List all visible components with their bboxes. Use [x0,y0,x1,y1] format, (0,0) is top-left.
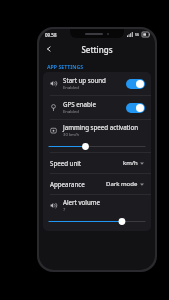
staticText: GPS enable [63,100,96,108]
staticText: Enabled [63,109,79,115]
staticText: Enabled [63,85,79,91]
button[interactable]: Back [41,41,57,57]
button[interactable]: Start up sound [43,72,151,95]
staticText: Settings [81,44,113,55]
button[interactable]: Alert volume [43,195,151,227]
staticText: Alert volume [63,198,101,206]
button[interactable]: Toggle [126,103,145,113]
staticText: Appearance [50,180,85,188]
staticText: Start up sound [63,76,106,84]
button[interactable]: GPS enable [43,96,151,119]
staticText: 56 [135,32,140,37]
button[interactable]: Jamming speed activation [43,120,151,152]
button[interactable]: Speed unit [43,153,151,173]
staticText: APP SETTINGS [47,63,84,70]
staticText: 30 km/h [63,132,80,138]
staticText: Dark mode [106,180,138,188]
button[interactable]: Appearance [43,174,151,194]
staticText: 09.58 [45,32,57,38]
staticText: Speed unit [50,159,82,167]
button[interactable]: Toggle [126,79,145,89]
staticText: 7 [63,207,66,213]
staticText: Jamming speed activation [63,123,139,131]
staticText: km/h [123,159,138,167]
